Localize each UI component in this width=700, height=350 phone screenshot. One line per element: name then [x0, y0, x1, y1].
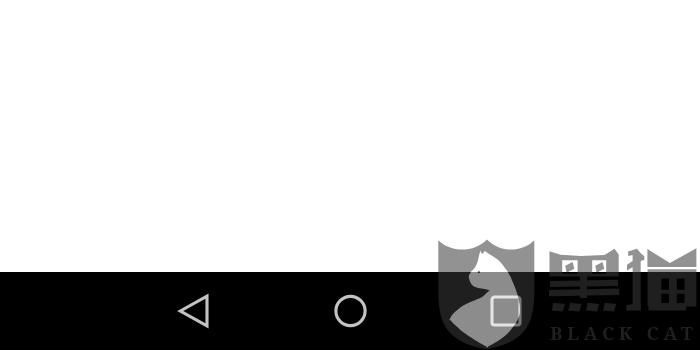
button[interactable]: Back [170, 287, 218, 335]
button[interactable]: Home [326, 287, 374, 335]
staticText: BLACK CAT [550, 320, 698, 345]
button[interactable]: Recent apps [482, 287, 530, 335]
